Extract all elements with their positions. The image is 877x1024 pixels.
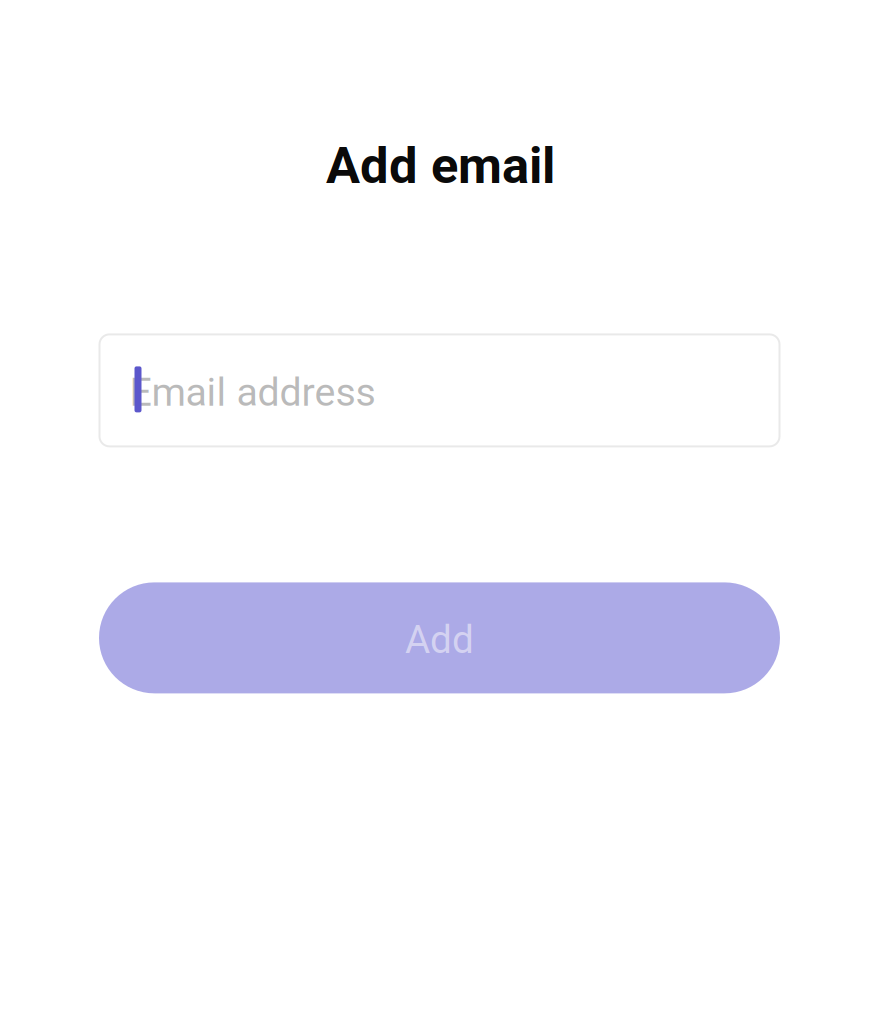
button[interactable]: Add (98, 582, 779, 693)
staticText: Email address (129, 369, 375, 415)
staticText: Add email (326, 136, 555, 195)
staticText: Add (405, 617, 474, 662)
button[interactable]: Email address (98, 334, 778, 446)
